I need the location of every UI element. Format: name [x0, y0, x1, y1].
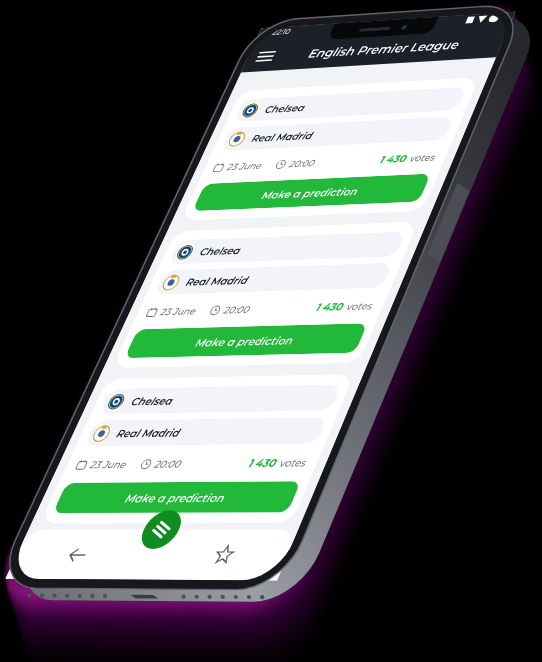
button[interactable]: Chelsea — [12, 488, 348, 662]
button[interactable]: Chelsea — [23, 501, 337, 534]
button[interactable]: Chelsea — [23, 105, 337, 138]
button[interactable]: Chelsea — [23, 303, 337, 336]
button[interactable]: Make a prediction — [23, 621, 337, 659]
staticText: Real Madrid — [62, 551, 148, 567]
button[interactable]: Chelsea — [12, 290, 348, 474]
staticText: Chelsea — [62, 510, 118, 526]
staticText: Make a prediction — [114, 236, 247, 253]
staticText: English Premier League — [89, 33, 300, 54]
button[interactable]: Make a prediction — [23, 423, 337, 461]
staticText: votes — [300, 195, 334, 210]
button[interactable]: Real Madrid — [23, 542, 337, 575]
staticText: Make a prediction — [114, 434, 247, 451]
staticText: Make a prediction — [114, 632, 247, 649]
button[interactable]: Real Madrid — [23, 146, 337, 179]
staticText: 20:00 — [133, 393, 168, 408]
staticText: votes — [300, 591, 334, 606]
staticText: 23 June — [45, 591, 94, 606]
button[interactable]: Chelsea — [12, 92, 348, 276]
staticText: Real Madrid — [62, 353, 148, 369]
staticText: 23 June — [45, 393, 94, 408]
staticText: Chelsea — [62, 312, 118, 328]
staticText: 1 430 — [259, 590, 295, 606]
staticText: 20:00 — [133, 591, 168, 606]
button[interactable]: Make a prediction — [23, 225, 337, 263]
button[interactable]: Real Madrid — [23, 344, 337, 377]
staticText: 1 430 — [259, 194, 295, 210]
